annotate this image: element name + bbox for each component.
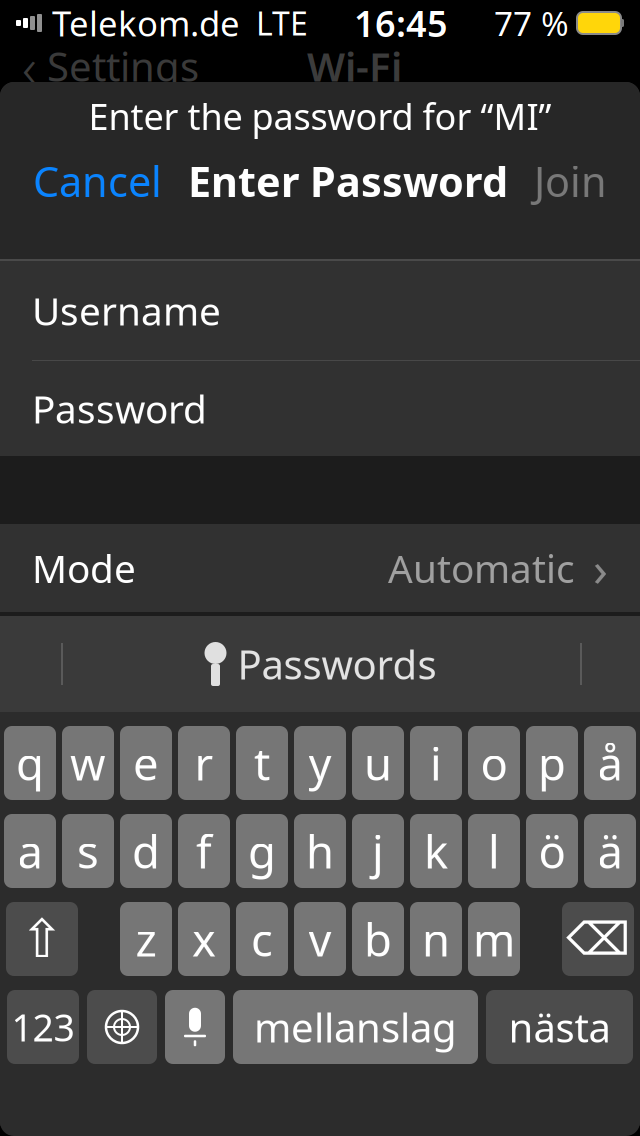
staticText: 123 [11,1002,74,1052]
button[interactable]: e [120,726,172,800]
staticText: i [430,733,442,793]
staticText: t [254,733,270,793]
staticText: u [364,733,392,793]
button[interactable]: Password [0,361,640,456]
staticText: c [251,909,273,969]
button[interactable]: p [526,726,578,800]
staticText: › [593,536,608,600]
button[interactable]: m [468,902,520,976]
staticText: m [473,909,515,969]
button[interactable]: k [410,814,462,888]
button[interactable]: f [178,814,230,888]
button[interactable]: c [236,902,288,976]
staticText: Join [534,154,607,208]
staticText: j [372,821,384,881]
button[interactable]: d [120,814,172,888]
button[interactable]: 123 [7,990,79,1064]
staticText: b [364,909,392,969]
staticText: o [480,733,507,793]
button[interactable]: å [584,726,636,800]
staticText: v [308,909,331,969]
button[interactable]: o [468,726,520,800]
button[interactable]: u [352,726,404,800]
staticText: a [17,821,42,881]
staticText: n [422,909,450,969]
staticText: Password [32,383,207,434]
staticText: z [135,909,156,969]
staticText: Settings [47,39,199,92]
button[interactable]: Username [0,261,640,360]
staticText: ⌫ [566,913,630,965]
button[interactable]: ä [584,814,636,888]
button[interactable]: Join [522,150,619,212]
button[interactable]: n [410,902,462,976]
button[interactable]: g [236,814,288,888]
staticText: Enter Password [188,154,508,208]
button[interactable]: z [120,902,172,976]
button[interactable]: t [236,726,288,800]
staticText: 77 % [494,1,569,45]
staticText: ⇧ [19,909,64,969]
staticText: å [597,733,622,793]
staticText: Automatic [388,542,575,594]
button[interactable]: r [178,726,230,800]
button[interactable]: Delete [562,902,634,976]
button[interactable]: i [410,726,462,800]
button[interactable]: mellanslag [233,990,478,1064]
staticText: g [248,821,276,881]
staticText: w [70,733,106,793]
staticText: Wi-Fi [307,39,402,92]
staticText: x [192,909,216,969]
button[interactable]: s [62,814,114,888]
staticText: Mode [32,542,136,594]
staticText: ‹ [22,29,37,103]
button[interactable]: Shift [6,902,78,976]
staticText: h [306,821,334,881]
button[interactable]: Passwords [183,628,456,700]
staticText: Username [32,285,221,336]
staticText: l [488,821,500,881]
staticText: ä [597,821,622,881]
staticText: Cancel [33,154,162,208]
button[interactable]: w [62,726,114,800]
staticText: f [196,821,212,881]
button[interactable]: l [468,814,520,888]
staticText: y [308,733,331,793]
button[interactable]: y [294,726,346,800]
staticText: p [538,733,566,793]
button[interactable]: h [294,814,346,888]
staticText: q [16,733,44,793]
button[interactable]: a [4,814,56,888]
button[interactable]: Dictation [165,990,225,1064]
staticText: k [424,821,448,881]
staticText: ö [538,821,565,881]
staticText: s [77,821,99,881]
staticText: Telekom.de [52,0,240,46]
button[interactable]: Mode [0,524,640,612]
staticText: r [194,733,213,793]
button[interactable]: j [352,814,404,888]
staticText: d [132,821,160,881]
button[interactable]: nästa [486,990,633,1064]
staticText: nästa [508,1000,610,1053]
button[interactable]: ö [526,814,578,888]
staticText: Passwords [237,637,436,690]
button[interactable]: b [352,902,404,976]
staticText: 16:45 [354,0,448,47]
staticText: Enter the password for “MI” [88,92,551,140]
button[interactable]: Next keyboard [87,990,157,1064]
button[interactable]: q [4,726,56,800]
staticText: mellanslag [254,1000,457,1053]
button[interactable]: x [178,902,230,976]
staticText: e [133,733,159,793]
button[interactable]: Cancel [21,150,174,212]
staticText: LTE [256,2,308,44]
button[interactable]: v [294,902,346,976]
